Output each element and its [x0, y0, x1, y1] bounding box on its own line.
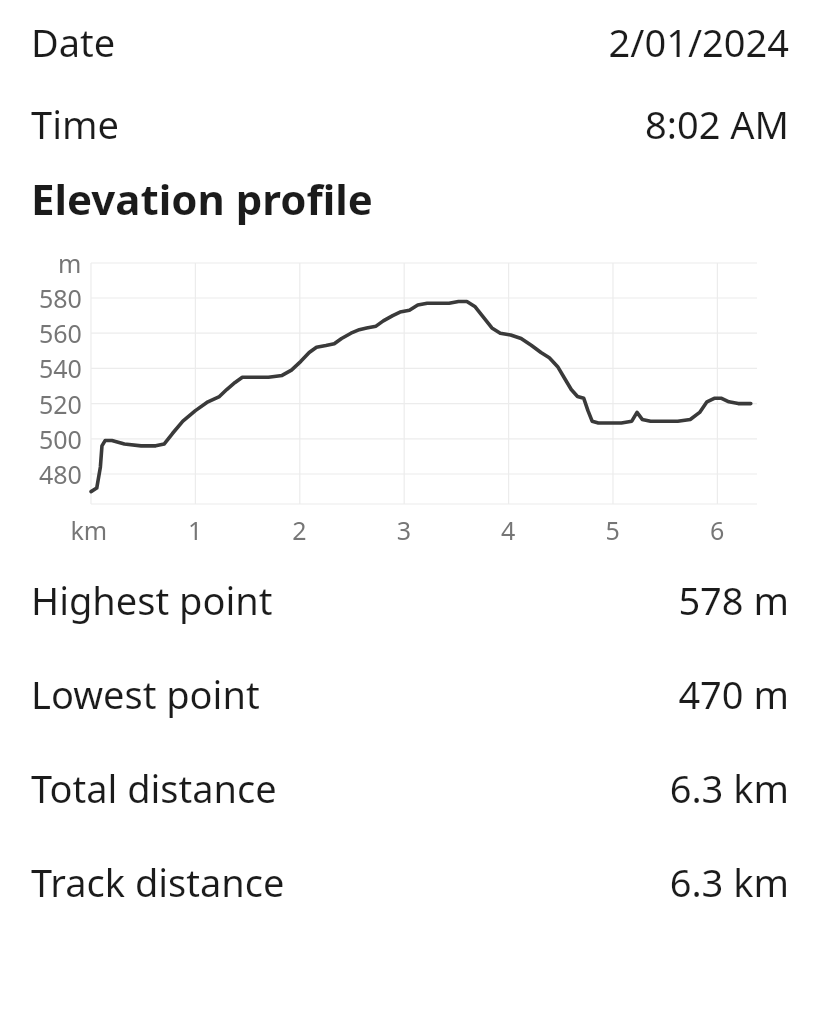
staticText: 2/01/2024	[608, 16, 789, 68]
button[interactable]: Highest point	[0, 553, 820, 647]
staticText: 578 m	[678, 574, 789, 626]
button[interactable]: Date	[0, 0, 820, 84]
staticText: 6.3 km	[669, 856, 789, 908]
button[interactable]: Elevation profile chart	[0, 233, 820, 553]
button[interactable]: Track distance	[0, 835, 820, 929]
staticText: Track distance	[31, 856, 285, 908]
staticText: 470 m	[678, 668, 789, 720]
staticText: Lowest point	[31, 668, 260, 720]
staticText: Total distance	[31, 762, 277, 814]
staticText: Elevation profile	[31, 170, 373, 227]
button[interactable]: Total distance	[0, 741, 820, 835]
staticText: Highest point	[31, 574, 273, 626]
staticText: 8:02 AM	[644, 98, 789, 150]
staticText: Date	[31, 16, 116, 68]
button[interactable]: Time	[0, 84, 820, 163]
staticText: Time	[31, 98, 119, 150]
button[interactable]: Lowest point	[0, 647, 820, 741]
staticText: 6.3 km	[669, 762, 789, 814]
